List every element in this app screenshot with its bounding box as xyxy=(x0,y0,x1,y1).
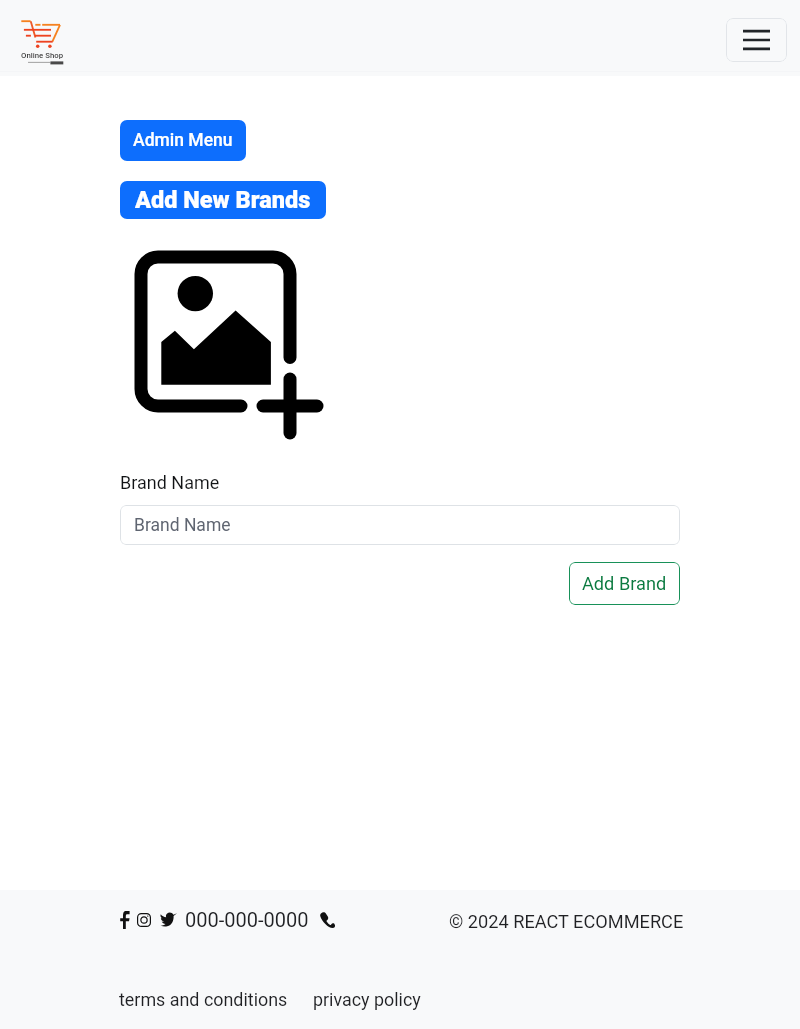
button[interactable]: Add New Brands xyxy=(120,181,326,219)
staticText: © 2024 REACT ECOMMERCE xyxy=(449,911,684,932)
staticText: Admin Menu xyxy=(133,130,233,151)
button[interactable]: Call xyxy=(317,909,337,931)
staticText: Add Brand xyxy=(582,573,667,594)
staticText: Brand Name xyxy=(120,472,220,493)
staticText: 000-000-0000 xyxy=(185,908,309,931)
button[interactable]: Add image xyxy=(134,252,324,440)
button[interactable]: Online Shop home xyxy=(15,20,63,76)
button[interactable]: privacy policy xyxy=(313,989,421,1010)
button[interactable]: Toggle navigation xyxy=(726,18,787,62)
staticText: Add New Brands xyxy=(135,186,311,214)
staticText: Brand Name xyxy=(134,515,231,536)
staticText: Online Shop xyxy=(21,51,64,60)
button[interactable]: Brand Name xyxy=(120,505,680,545)
button[interactable]: Twitter xyxy=(157,909,179,931)
button[interactable]: terms and conditions xyxy=(119,989,288,1010)
button[interactable]: Instagram xyxy=(134,909,154,931)
button[interactable]: Add Brand xyxy=(569,562,680,605)
button[interactable]: Facebook xyxy=(118,909,132,931)
button[interactable]: Admin Menu xyxy=(120,120,246,161)
